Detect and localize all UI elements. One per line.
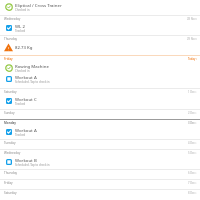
button[interactable]: Thursday [0,35,200,42]
other: Checked in [5,3,13,11]
button[interactable]: Checked [0,126,200,137]
staticText: Friday [4,181,13,185]
staticText: 1 Dec › [188,90,197,94]
button[interactable]: Body weight [0,42,200,52]
staticText: Wednesday [4,151,21,155]
staticText: Scheduled. Tap to check in [15,163,50,167]
staticText: Tracked [15,102,26,106]
staticText: 8 Dec › [188,191,197,195]
staticText: Tracked [15,133,26,137]
other: Body weight [4,43,13,52]
button[interactable]: Friday [0,55,200,62]
button[interactable]: Checked in [0,62,200,73]
button[interactable]: Wednesday [0,149,200,156]
other: Checked [6,25,12,31]
other: Checked in [5,64,13,72]
staticText: 7 Dec › [188,181,197,185]
staticText: Workout A [15,74,37,80]
staticText: Today › [188,57,197,61]
staticText: Sunday [4,111,15,115]
staticText: Checked in [15,8,30,12]
staticText: Tracked [15,29,26,33]
other: Checked [6,129,12,135]
button[interactable]: Tuesday [0,139,200,149]
staticText: Eliptical / Cross Trainer [15,2,62,8]
staticText: 4 Dec › [188,141,197,145]
staticText: Workout B [15,157,37,163]
staticText: Monday [4,121,17,125]
other: Not checked in [6,76,12,82]
staticText: WL 2 [15,23,25,29]
staticText: 3 Dec › [188,121,197,125]
button[interactable]: Monday [0,119,200,126]
button[interactable]: Saturday [0,88,200,95]
button[interactable]: Sunday [0,109,200,119]
staticText: 5 Dec › [188,151,197,155]
button[interactable]: Friday [0,179,200,189]
other: Not checked in [6,159,12,165]
staticText: Tuesday [4,141,16,145]
staticText: 2 Dec › [188,111,197,115]
staticText: Saturday [4,191,17,195]
button[interactable]: Not checked in [0,156,200,167]
staticText: 82.73 Kg [15,44,33,50]
staticText: Scheduled. Tap to check in [15,80,50,84]
staticText: 29 Nov › [187,37,197,41]
staticText: 6 Dec › [188,171,197,175]
button[interactable]: Not checked in [0,73,200,84]
button[interactable]: Thursday [0,169,200,179]
staticText: Friday [4,57,13,61]
staticText: Thursday [4,171,18,175]
button[interactable]: Checked [0,95,200,106]
button[interactable]: Checked [0,22,200,33]
other: Checked [6,98,12,104]
button[interactable]: Saturday [0,189,200,199]
staticText: Wednesday [4,17,21,21]
staticText: Saturday [4,90,17,94]
staticText: 28 Nov › [187,17,197,21]
staticText: Workout A [15,127,37,133]
button[interactable]: Wednesday [0,15,200,22]
staticText: Thursday [4,37,18,41]
staticText: Rowing Machine [15,63,49,69]
staticText: Checked in [15,69,30,73]
button[interactable]: Checked in [0,1,200,12]
staticText: Workout C [15,96,37,102]
